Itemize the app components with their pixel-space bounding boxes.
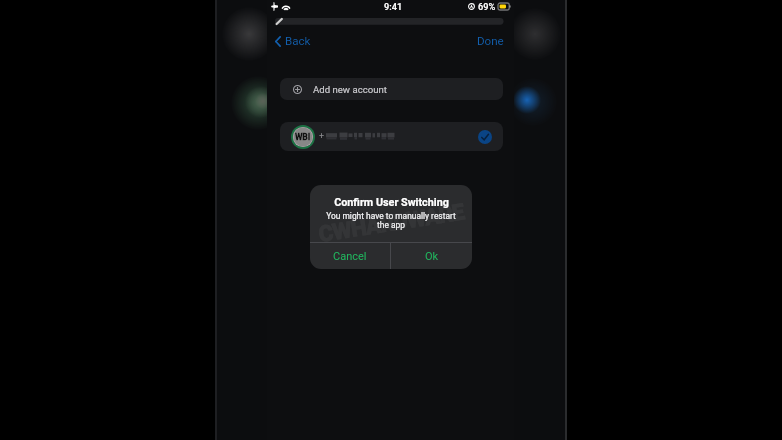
button[interactable]: Done <box>467 30 514 52</box>
button[interactable]: WBI <box>280 122 503 151</box>
staticText: 9:41 <box>384 1 403 12</box>
button[interactable]: Add new account <box>280 78 503 100</box>
staticText: + <box>319 131 325 142</box>
other: Selected account <box>478 130 492 144</box>
staticText: Done <box>477 34 504 48</box>
staticText: 69% <box>478 1 496 12</box>
staticText: WBI <box>295 132 311 142</box>
button[interactable]: Cancel <box>310 243 390 269</box>
button[interactable]: Back <box>267 30 317 52</box>
staticText: Ok <box>425 250 439 263</box>
staticText: Back <box>285 34 311 48</box>
staticText: Confirm User Switching <box>334 196 449 209</box>
staticText: Cancel <box>333 250 367 263</box>
staticText: Add new account <box>313 84 387 95</box>
button[interactable]: Ok <box>391 243 472 269</box>
staticText: CWHARDWARE <box>317 199 466 248</box>
staticText: You might have to manually restart the a… <box>326 211 456 230</box>
